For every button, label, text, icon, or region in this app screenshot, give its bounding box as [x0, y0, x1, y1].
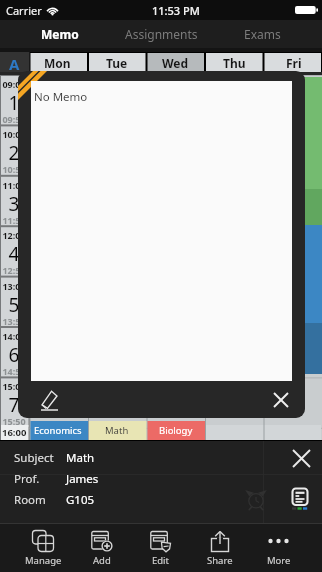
- staticText: Add: [93, 554, 111, 567]
- staticText: 1: [0, 90, 28, 116]
- staticText: Share: [207, 554, 233, 567]
- button[interactable]: Manage: [14, 524, 72, 572]
- staticText: 5: [0, 292, 28, 318]
- staticText: 12:00: [0, 229, 28, 241]
- staticText: 7: [0, 392, 28, 418]
- staticText: Tue: [106, 55, 128, 71]
- staticText: Assignments: [125, 26, 198, 42]
- staticText: Biology: [159, 424, 193, 437]
- button[interactable]: Add: [72, 524, 131, 572]
- staticText: No Memo: [34, 89, 88, 105]
- staticText: Fri: [286, 55, 302, 71]
- staticText: 13:00: [0, 280, 28, 292]
- staticText: Manage: [25, 554, 62, 567]
- staticText: Economics: [34, 424, 82, 437]
- button[interactable]: Assignments: [111, 20, 212, 48]
- staticText: 15:50: [0, 415, 28, 427]
- staticText: 14:50: [0, 365, 28, 377]
- staticText: 4: [0, 241, 28, 267]
- staticText: 16:00: [2, 426, 27, 439]
- button[interactable]: More: [249, 524, 308, 572]
- staticText: A: [9, 54, 20, 74]
- staticText: 11:00: [0, 179, 28, 191]
- staticText: 15:00: [0, 380, 28, 392]
- staticText: 09:00: [0, 78, 28, 90]
- button[interactable]: Memo: [9, 20, 111, 48]
- button[interactable]: Share: [190, 524, 249, 572]
- staticText: Prof.: [14, 471, 40, 487]
- staticText: 11:50: [0, 214, 28, 226]
- button[interactable]: Close details: [280, 441, 322, 475]
- staticText: Carrier: [6, 3, 42, 18]
- staticText: More: [267, 554, 291, 567]
- button[interactable]: Edit: [131, 524, 190, 572]
- staticText: 6: [0, 342, 28, 368]
- staticText: 12:50: [0, 264, 28, 276]
- button[interactable]: Edit memo: [30, 382, 68, 418]
- staticText: 10:00: [0, 128, 28, 140]
- button[interactable]: Memo: [278, 475, 322, 523]
- staticText: Math: [66, 450, 95, 466]
- staticText: 14:00: [0, 330, 28, 342]
- staticText: Wed: [162, 55, 189, 71]
- staticText: Thu: [223, 55, 246, 71]
- staticText: Memo: [41, 26, 79, 42]
- staticText: Mon: [44, 55, 71, 71]
- staticText: 10:50: [0, 163, 28, 175]
- button[interactable]: Set alarm: [234, 475, 278, 523]
- staticText: 13:50: [0, 315, 28, 327]
- staticText: G105: [66, 492, 95, 508]
- staticText: Room: [14, 492, 46, 508]
- staticText: Subject: [14, 450, 54, 466]
- staticText: Edit: [152, 554, 170, 567]
- button[interactable]: Close memo: [262, 382, 300, 418]
- staticText: 11:53 PM: [152, 3, 200, 18]
- staticText: 2: [0, 140, 28, 166]
- staticText: James: [66, 471, 99, 487]
- staticText: Math: [105, 424, 129, 437]
- staticText: 09:50: [0, 113, 28, 125]
- staticText: 3: [0, 191, 28, 217]
- button[interactable]: Exams: [212, 20, 313, 48]
- staticText: Exams: [244, 26, 281, 42]
